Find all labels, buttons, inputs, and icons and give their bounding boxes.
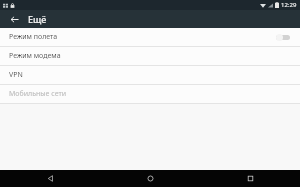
staticText: 12:29 [281, 1, 297, 9]
staticText: VPN [9, 70, 23, 80]
button[interactable]: Режим полета [0, 28, 300, 46]
staticText: Режим модема [9, 51, 61, 61]
button[interactable]: Назад [6, 11, 22, 27]
button[interactable]: Recents [200, 170, 300, 187]
button[interactable]: Мобильные сети [0, 85, 300, 103]
button[interactable] [273, 30, 293, 44]
staticText: Ещё [28, 13, 47, 25]
button[interactable]: VPN [0, 66, 300, 84]
button[interactable]: Back [0, 170, 100, 187]
button[interactable]: Home [100, 170, 200, 187]
button[interactable]: Режим модема [0, 47, 300, 65]
staticText: Режим полета [9, 32, 58, 42]
staticText: Мобильные сети [9, 89, 67, 99]
